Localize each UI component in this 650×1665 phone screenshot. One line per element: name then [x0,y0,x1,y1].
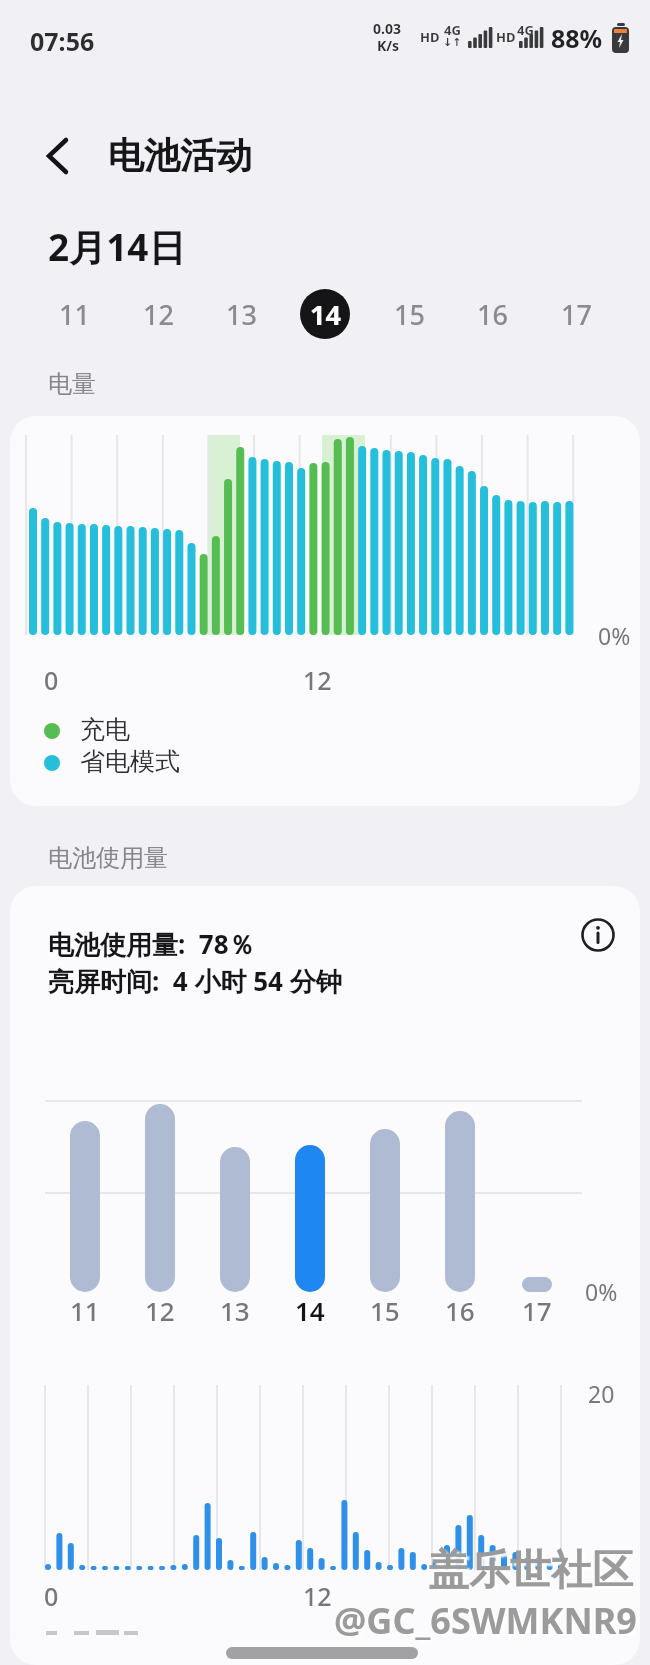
staticText: 13 [220,1293,250,1328]
staticText: 2月14日 [48,221,186,272]
staticText: 4G [444,21,461,39]
staticText: 0 [44,663,59,697]
staticText: 盖乐世社区 [428,1545,633,1597]
staticText: 0% [598,620,631,651]
staticText: 88% [551,21,603,55]
staticText: 11 [59,296,90,333]
staticText: 07:56 [30,24,95,58]
staticText: 14 [310,296,341,333]
staticText: 电池活动 [108,133,252,178]
button[interactable]: 15 [384,289,434,339]
staticText: 16 [477,296,508,333]
button[interactable]: 14 [300,289,350,339]
staticText: 12 [143,296,174,333]
staticText: 12 [145,1293,175,1328]
staticText: 亮屏时间: 4 小时 54 分钟 [48,963,342,999]
staticText: 电量 [48,369,96,399]
button[interactable]: 11 [49,289,99,339]
staticText: HD [420,28,440,46]
button[interactable]: 13 [216,289,266,339]
staticText: 0.03 [373,19,401,38]
button[interactable] [30,128,86,184]
staticText: ↓↑ [443,36,462,49]
button[interactable]: 12 [133,289,183,339]
staticText: 电池使用量: 78％ [48,926,255,962]
staticText: 15 [370,1293,400,1328]
button[interactable]: 16 [467,289,517,339]
staticText: 0 [44,1579,59,1613]
staticText: 12 [303,1579,332,1613]
button[interactable] [568,905,628,965]
button[interactable]: 17 [551,289,601,339]
staticText: @GC_6SWMKNR9 [334,1596,637,1645]
staticText: 20 [588,1378,615,1409]
staticText: 4G [517,21,534,39]
staticText: 12 [303,663,332,697]
staticText: HD [496,28,516,46]
staticText: 充电 [80,714,130,745]
staticText: 17 [522,1293,552,1328]
staticText: K/s [377,36,400,55]
staticText: 16 [445,1293,475,1328]
staticText: 省电模式 [80,746,180,777]
staticText: 电池使用量 [48,843,168,873]
staticText: 11 [70,1293,100,1328]
staticText: 14 [295,1293,325,1328]
staticText: 13 [226,296,257,333]
staticText: 15 [394,296,425,333]
staticText: 0% [585,1276,618,1307]
staticText: 17 [561,296,592,333]
